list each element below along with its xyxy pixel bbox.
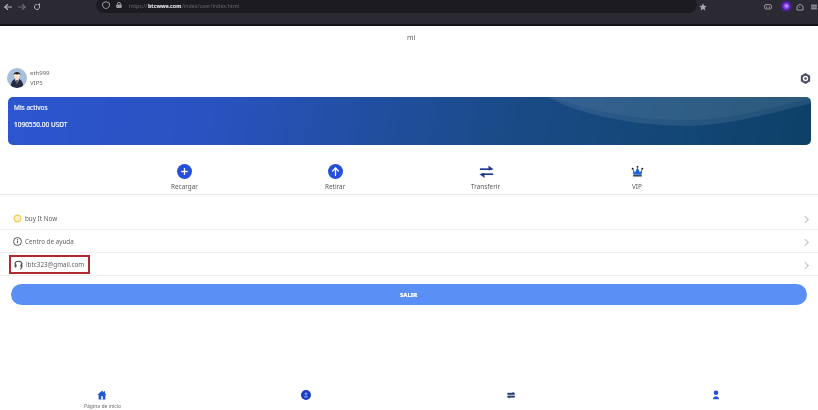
button[interactable]: Back — [0, 0, 18, 17]
staticText: Mis activos — [14, 103, 48, 112]
button[interactable]: buy It Now — [0, 207, 818, 229]
staticText: https:// — [129, 2, 148, 9]
staticText: lbtc323@gmail.com — [26, 260, 85, 269]
staticText: buy It Now — [25, 214, 58, 223]
button[interactable]: Transferir — [456, 164, 516, 191]
button[interactable]: Reload — [27, 0, 47, 17]
button[interactable]: Profile — [613, 386, 818, 403]
button[interactable]: Bookmark — [693, 0, 713, 17]
button[interactable]: Extensions — [758, 0, 778, 17]
staticText: btcwwe.com — [148, 2, 182, 9]
staticText: Página de inicio — [84, 403, 121, 410]
button[interactable]: Extension — [775, 0, 795, 17]
button[interactable]: Avatar — [7, 68, 27, 88]
button[interactable]: lbtc323@gmail.com — [0, 253, 818, 275]
staticText: VIP5 — [30, 79, 43, 87]
staticText: SALIR — [400, 291, 418, 299]
button[interactable]: Recargar — [154, 164, 214, 191]
staticText: 1090550.00 USDT — [14, 120, 68, 129]
staticText: VIP — [632, 182, 642, 191]
button[interactable]: Settings — [795, 68, 815, 88]
staticText: Centro de ayuda — [25, 237, 74, 246]
staticText: mi — [407, 33, 416, 43]
button[interactable]: Wallet — [204, 386, 408, 403]
button[interactable]: Home — [0, 386, 204, 410]
button[interactable]: https:// — [96, 0, 697, 13]
staticText: Recargar — [171, 182, 198, 191]
button[interactable]: Retirar — [305, 164, 365, 191]
button[interactable]: SALIR — [11, 284, 807, 305]
button[interactable]: Transfer — [408, 386, 613, 403]
button[interactable]: Account — [790, 0, 810, 17]
button[interactable]: Centro de ayuda — [0, 230, 818, 252]
staticText: eth999 — [30, 69, 50, 77]
button[interactable]: Menu — [804, 0, 818, 17]
staticText: /index/user/index.html — [182, 2, 239, 9]
staticText: Transferir — [471, 182, 501, 191]
button[interactable]: Forward — [12, 0, 32, 17]
staticText: Retirar — [325, 182, 346, 191]
button[interactable]: VIP — [607, 164, 667, 191]
